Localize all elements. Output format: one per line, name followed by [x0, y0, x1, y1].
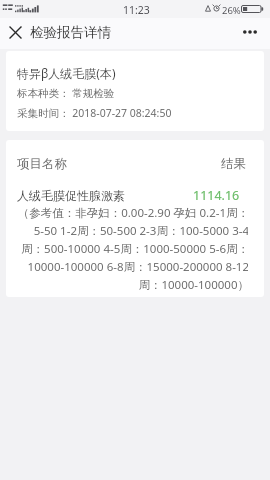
staticText: 结果: [221, 156, 246, 172]
staticText: 特异β人绒毛膜(本): [17, 65, 116, 81]
staticText: 26%: [222, 4, 241, 17]
staticText: 标本种类： 常规检验: [17, 86, 115, 100]
staticText: 1114.16: [193, 187, 240, 204]
staticText: 采集时间： 2018-07-27 08:24:50: [17, 106, 172, 120]
staticText: 检验报告详情: [30, 24, 111, 41]
button[interactable]: Close: [1, 18, 29, 49]
staticText: （参考值：非孕妇：0.00-2.90 孕妇 0.2-1周： 5-50 1-2周：…: [17, 204, 248, 294]
button[interactable]: 特异β人绒毛膜(本): [6, 51, 264, 131]
staticText: 人绒毛膜促性腺激素: [17, 188, 125, 203]
staticText: 项目名称: [17, 156, 67, 172]
staticText: 11:23: [123, 3, 150, 17]
button[interactable]: More options: [236, 18, 264, 49]
